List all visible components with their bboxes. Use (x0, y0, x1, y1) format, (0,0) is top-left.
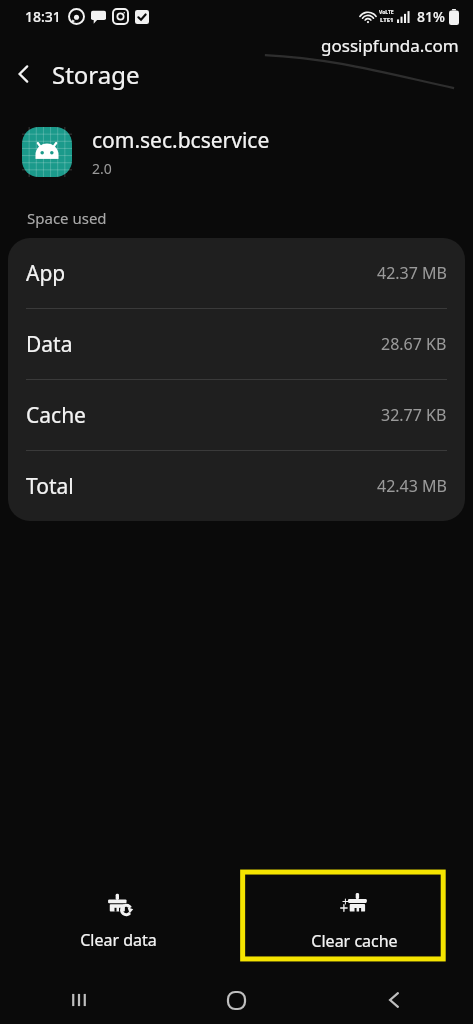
staticText: Storage (52, 58, 140, 91)
staticText: 32.77 KB (381, 404, 447, 426)
staticText: Total (26, 472, 74, 501)
button[interactable]: Data (8, 309, 465, 379)
staticText: 81% (417, 7, 445, 26)
button[interactable]: Cache (8, 380, 465, 450)
button[interactable]: Back (0, 50, 48, 98)
staticText: 28.67 KB (381, 333, 447, 355)
staticText: com.sec.bcservice (92, 126, 270, 155)
staticText: App (26, 259, 66, 288)
staticText: Cache (26, 401, 86, 430)
staticText: Clear cache (311, 930, 398, 952)
staticText: gossipfunda.com (321, 34, 459, 57)
button[interactable]: Clear cache (236, 866, 473, 976)
staticText: 42.43 MB (377, 475, 447, 497)
button[interactable]: Clear data (0, 866, 236, 976)
staticText: LTE1 (380, 16, 394, 24)
staticText: VoLTE (379, 9, 394, 16)
staticText: Data (26, 330, 73, 359)
staticText: 18:31 (25, 7, 61, 26)
button[interactable]: Recents (0, 976, 157, 1024)
button[interactable]: App (8, 238, 465, 308)
staticText: Clear data (80, 929, 157, 951)
button[interactable]: Home (157, 976, 315, 1024)
button[interactable]: Total (8, 451, 465, 521)
button[interactable]: com.sec.bcservice (22, 126, 473, 178)
staticText: Space used (27, 208, 107, 228)
button[interactable]: Back (315, 976, 473, 1024)
staticText: 42.37 MB (377, 262, 447, 284)
staticText: 2.0 (92, 159, 112, 178)
